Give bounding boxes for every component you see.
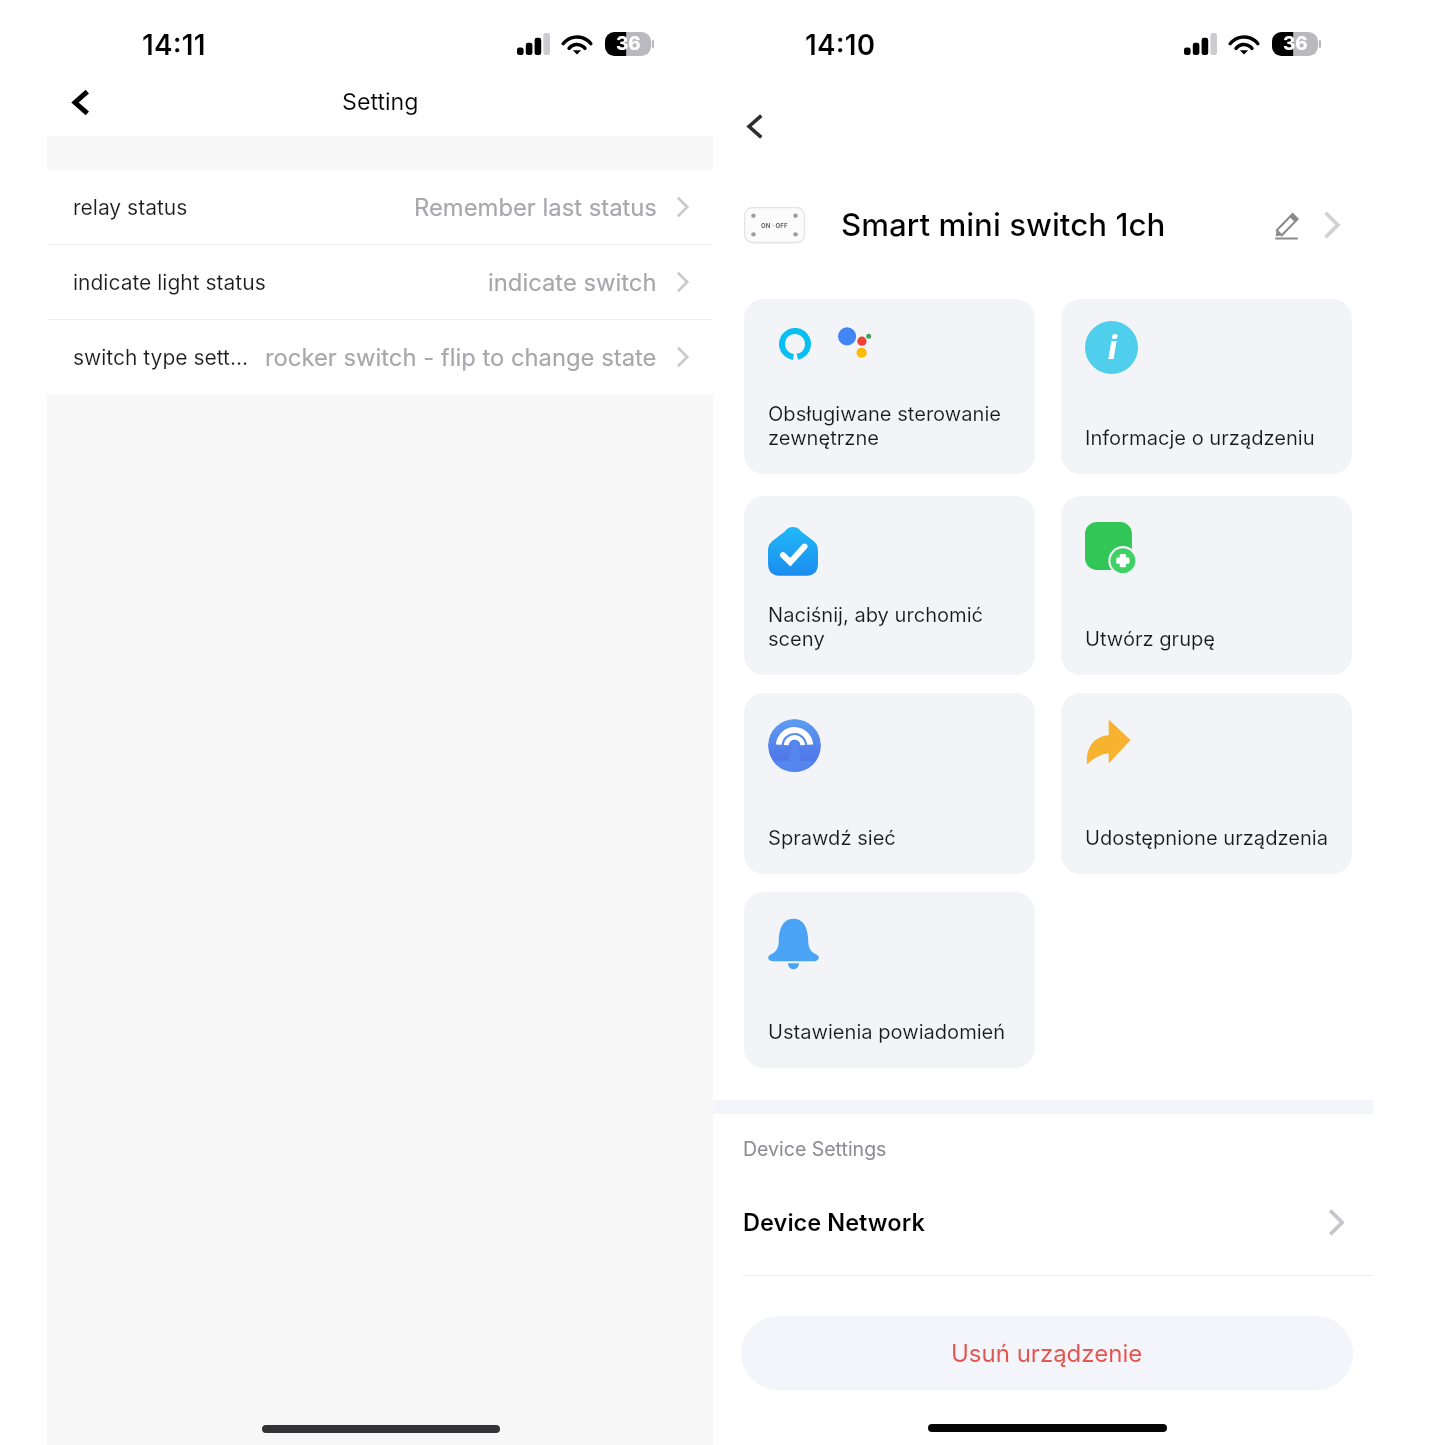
staticText: ON · OFF bbox=[761, 222, 788, 229]
button[interactable]: Edit device name bbox=[1269, 207, 1305, 243]
staticText: Ustawienia powiadomień bbox=[768, 1020, 1006, 1044]
staticText: i bbox=[1108, 327, 1117, 367]
staticText: 36 bbox=[616, 32, 641, 55]
button[interactable]: Back bbox=[72, 89, 90, 116]
staticText: switch type sett... bbox=[73, 345, 249, 370]
staticText: relay status bbox=[73, 195, 188, 220]
staticText: Remember last status bbox=[414, 193, 657, 222]
button[interactable]: i bbox=[1061, 299, 1352, 474]
button[interactable]: Device details bbox=[1314, 208, 1348, 242]
staticText: Utwórz grupę bbox=[1085, 627, 1216, 651]
staticText: indicate light status bbox=[73, 270, 266, 295]
staticText: 36 bbox=[1283, 32, 1308, 55]
button[interactable]: Udostępnione urządzenia bbox=[1061, 693, 1352, 874]
staticText: Setting bbox=[342, 88, 419, 116]
staticText: Smart mini switch 1ch bbox=[841, 206, 1166, 244]
staticText: Device Network bbox=[743, 1208, 925, 1237]
staticText: indicate switch bbox=[488, 268, 657, 297]
button[interactable]: Device Network bbox=[743, 1206, 1352, 1238]
staticText: Sprawdź sieć bbox=[768, 826, 896, 850]
button[interactable]: Naciśnij, aby urchomić sceny bbox=[744, 496, 1035, 675]
staticText: Usuń urządzenie bbox=[951, 1339, 1143, 1368]
staticText: Udostępnione urządzenia bbox=[1085, 826, 1328, 850]
staticText: 14:10 bbox=[805, 28, 876, 62]
staticText: rocker switch - flip to change state bbox=[265, 343, 657, 372]
button[interactable]: switch type sett... bbox=[47, 320, 713, 394]
button[interactable]: Usuń urządzenie bbox=[741, 1316, 1353, 1390]
staticText: Device Settings bbox=[743, 1137, 887, 1161]
button[interactable]: indicate light status bbox=[47, 245, 713, 319]
staticText: Obsługiwane sterowanie zewnętrzne bbox=[768, 402, 1027, 450]
staticText: Naciśnij, aby urchomić sceny bbox=[768, 603, 1027, 651]
button[interactable]: Utwórz grupę bbox=[1061, 496, 1352, 675]
button[interactable]: Obsługiwane sterowanie zewnętrzne bbox=[744, 299, 1035, 474]
staticText: 14:11 bbox=[142, 28, 206, 62]
button[interactable]: Sprawdź sieć bbox=[744, 693, 1035, 874]
staticText: Informacje o urządzeniu bbox=[1085, 426, 1315, 450]
button[interactable]: Back bbox=[746, 113, 764, 140]
button[interactable]: Ustawienia powiadomień bbox=[744, 892, 1035, 1068]
button[interactable]: relay status bbox=[47, 170, 713, 244]
